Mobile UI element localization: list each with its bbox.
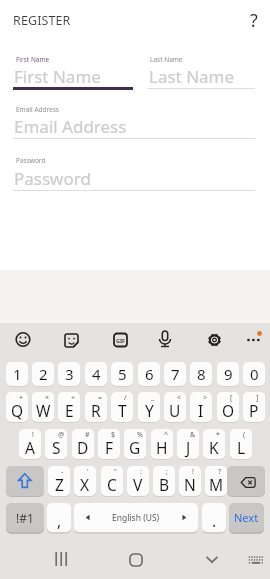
- button[interactable]: D: [72, 429, 94, 459]
- staticText: 1: [13, 364, 22, 384]
- staticText: -: [61, 467, 64, 477]
- button[interactable]: L: [230, 429, 252, 459]
- staticText: K: [209, 437, 219, 458]
- button[interactable]: [227, 466, 265, 496]
- button[interactable]: U: [164, 392, 186, 422]
- button[interactable]: Z: [48, 466, 70, 496]
- staticText: ?: [250, 8, 258, 33]
- button[interactable]: 3: [58, 362, 80, 386]
- staticText: English (US): [112, 512, 160, 524]
- button[interactable]: G: [124, 429, 146, 459]
- staticText: _: [151, 393, 155, 403]
- button[interactable]: Email Address: [14, 115, 127, 138]
- button[interactable]: C: [101, 466, 123, 496]
- staticText: +: [19, 393, 24, 403]
- staticText: 0: [250, 364, 259, 384]
- staticText: D: [77, 437, 89, 458]
- button[interactable]: Y: [138, 392, 160, 422]
- staticText: ': [87, 467, 89, 477]
- button[interactable]: H: [151, 429, 173, 459]
- button[interactable]: [45, 540, 77, 572]
- button[interactable]: J: [177, 429, 199, 459]
- staticText: 4: [92, 364, 101, 384]
- button[interactable]: ,: [47, 503, 71, 532]
- staticText: &: [190, 430, 196, 440]
- staticText: E: [65, 400, 74, 421]
- button[interactable]: R: [85, 392, 107, 422]
- button[interactable]: .: [202, 503, 226, 532]
- staticText: Password: [16, 156, 46, 165]
- staticText: ×: [45, 393, 50, 403]
- staticText: 6: [145, 364, 154, 384]
- button[interactable]: B: [153, 466, 175, 496]
- staticText: 2: [39, 364, 48, 384]
- staticText: .: [212, 510, 217, 531]
- staticText: P: [249, 400, 259, 421]
- staticText: /: [124, 393, 127, 403]
- staticText: ^: [164, 430, 169, 440]
- button[interactable]: Password: [14, 167, 91, 190]
- staticText: (: [243, 430, 246, 440]
- staticText: GIF: [116, 337, 126, 344]
- staticText: ,: [57, 510, 62, 531]
- button[interactable]: X: [74, 466, 96, 496]
- button[interactable]: K: [203, 429, 225, 459]
- staticText: !#1: [16, 510, 34, 526]
- staticText: 5: [118, 364, 127, 384]
- button[interactable]: English (US): [74, 503, 198, 532]
- staticText: #: [85, 430, 90, 440]
- button[interactable]: Last Name: [149, 65, 235, 88]
- button[interactable]: M: [205, 466, 227, 496]
- staticText: F: [105, 437, 114, 458]
- button[interactable]: A: [19, 429, 41, 459]
- button[interactable]: [240, 540, 270, 572]
- staticText: >: [203, 393, 208, 403]
- staticText: :: [140, 467, 142, 477]
- button[interactable]: [196, 540, 228, 572]
- staticText: 3: [65, 364, 74, 384]
- staticText: [: [230, 393, 233, 403]
- button[interactable]: 4: [85, 362, 107, 386]
- staticText: Z: [55, 474, 64, 495]
- staticText: @: [58, 430, 65, 440]
- staticText: X: [80, 474, 90, 495]
- button[interactable]: 9: [217, 362, 239, 386]
- staticText: C: [107, 474, 117, 495]
- staticText: S: [52, 437, 61, 458]
- button[interactable]: 6: [138, 362, 160, 386]
- button[interactable]: 5: [111, 362, 133, 386]
- staticText: 9: [224, 364, 233, 384]
- button[interactable]: P: [243, 392, 265, 422]
- button[interactable]: V: [127, 466, 149, 496]
- button[interactable]: [6, 466, 44, 496]
- button[interactable]: 1: [6, 362, 28, 386]
- button[interactable]: E: [58, 392, 80, 422]
- button[interactable]: Next: [229, 503, 264, 532]
- button[interactable]: [120, 540, 152, 572]
- button[interactable]: 7: [164, 362, 186, 386]
- button[interactable]: S: [45, 429, 67, 459]
- button[interactable]: O: [217, 392, 239, 422]
- button[interactable]: !#1: [6, 503, 44, 532]
- button[interactable]: 2: [32, 362, 54, 386]
- staticText: ": [114, 467, 117, 477]
- staticText: V: [133, 474, 143, 495]
- staticText: W: [36, 400, 51, 421]
- button[interactable]: 0: [243, 362, 265, 386]
- staticText: %: [137, 430, 143, 440]
- button[interactable]: F: [98, 429, 120, 459]
- button[interactable]: ?: [242, 5, 266, 35]
- staticText: H: [156, 437, 168, 458]
- button[interactable]: W: [32, 392, 54, 422]
- button[interactable]: I: [190, 392, 212, 422]
- staticText: A: [25, 437, 35, 458]
- staticText: M: [209, 474, 224, 495]
- staticText: *: [216, 430, 220, 440]
- staticText: U: [169, 400, 181, 421]
- button[interactable]: First Name: [14, 65, 101, 88]
- button[interactable]: T: [111, 392, 133, 422]
- button[interactable]: Q: [6, 392, 28, 422]
- staticText: ]: [256, 393, 259, 403]
- button[interactable]: 8: [190, 362, 212, 386]
- button[interactable]: N: [179, 466, 201, 496]
